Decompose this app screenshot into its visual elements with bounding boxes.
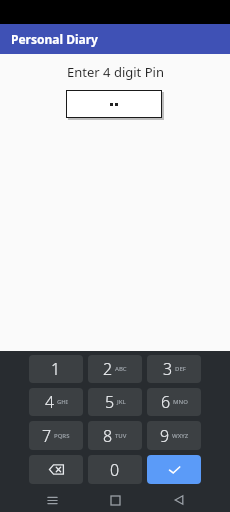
button[interactable]: 3	[147, 355, 201, 383]
staticText: PQRS	[54, 432, 70, 440]
button[interactable]: 4	[29, 388, 83, 416]
staticText: WXYZ	[172, 432, 189, 440]
button[interactable]: Enter	[147, 455, 201, 484]
button[interactable]	[66, 90, 164, 120]
staticText: 6	[161, 391, 171, 413]
button[interactable]: 9	[147, 421, 201, 450]
staticText: MNO	[173, 398, 188, 406]
staticText: Enter 4 digit Pin	[67, 63, 164, 81]
button[interactable]: Recents	[40, 488, 64, 512]
staticText: 0	[110, 459, 120, 481]
button[interactable]: 0	[88, 455, 142, 484]
staticText: 1	[51, 358, 61, 380]
staticText: TUV	[115, 432, 127, 440]
staticText: 8	[103, 425, 113, 447]
staticText: DEF	[175, 365, 186, 373]
button[interactable]: Back	[167, 488, 191, 512]
button[interactable]: 2	[88, 355, 142, 383]
staticText: ABC	[115, 365, 127, 373]
staticText: 5	[105, 391, 115, 413]
staticText: 2	[103, 358, 113, 380]
button[interactable]: 5	[88, 388, 142, 416]
button[interactable]: 1	[29, 355, 83, 383]
staticText: 4	[45, 391, 55, 413]
button[interactable]: 7	[29, 421, 83, 450]
staticText: 7	[42, 425, 52, 447]
button[interactable]: Home	[103, 488, 127, 512]
staticText: Personal Diary	[11, 31, 98, 47]
button[interactable]: 8	[88, 421, 142, 450]
staticText: GHI	[57, 398, 68, 406]
staticText: JKL	[117, 398, 126, 406]
staticText: 3	[163, 358, 173, 380]
button[interactable]: 6	[147, 388, 201, 416]
button[interactable]: Backspace	[29, 455, 83, 484]
staticText: 9	[160, 425, 170, 447]
